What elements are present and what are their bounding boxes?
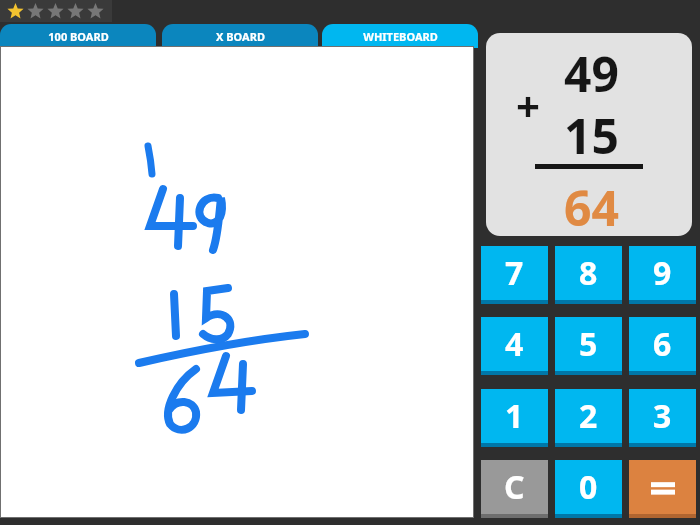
button[interactable]: 6 xyxy=(629,317,696,375)
staticText: 49 xyxy=(564,41,619,106)
button[interactable]: 1 xyxy=(481,389,548,447)
staticText: 7 xyxy=(505,251,524,295)
staticText: 9 xyxy=(653,251,672,295)
staticText: 100 BOARD xyxy=(48,29,109,44)
staticText: 64 xyxy=(564,175,619,236)
staticText: X BOARD xyxy=(216,29,265,44)
staticText: 8 xyxy=(579,251,598,295)
staticText: 15 xyxy=(564,103,619,168)
button[interactable]: 2 xyxy=(555,389,622,447)
staticText: + xyxy=(516,77,541,134)
button[interactable]: 9 xyxy=(629,246,696,304)
staticText: WHITEBOARD xyxy=(363,29,438,44)
button[interactable]: 0 xyxy=(555,460,622,518)
staticText: C xyxy=(504,465,525,509)
button[interactable]: X BOARD xyxy=(162,24,318,48)
button[interactable]: 3 xyxy=(629,389,696,447)
button[interactable]: 4 xyxy=(481,317,548,375)
button[interactable]: 5 xyxy=(555,317,622,375)
button[interactable]: 8 xyxy=(555,246,622,304)
staticText: 6 xyxy=(653,322,672,366)
staticText: 2 xyxy=(579,394,598,438)
button[interactable]: 100 BOARD xyxy=(0,24,156,48)
button[interactable]: Clear xyxy=(481,460,548,518)
button[interactable]: 7 xyxy=(481,246,548,304)
button[interactable]: WHITEBOARD xyxy=(322,24,478,48)
staticText: 4 xyxy=(505,322,524,366)
button[interactable]: Equals xyxy=(629,460,696,518)
staticText: 0 xyxy=(579,465,598,509)
staticText: 3 xyxy=(653,394,672,438)
staticText: 1 xyxy=(505,394,524,438)
staticText: 5 xyxy=(579,322,598,366)
